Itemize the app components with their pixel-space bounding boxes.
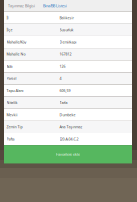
staticText: Taşınmaz Bilgisi: [8, 3, 35, 8]
staticText: Mahalle No: [6, 52, 25, 57]
staticText: İlçe: [6, 27, 12, 32]
button[interactable]: Favorilere ekle: [4, 145, 132, 163]
staticText: 606,59: [59, 88, 70, 93]
staticText: Balıkesir: [59, 15, 73, 20]
staticText: Tarla: [59, 100, 67, 105]
staticText: Ana Taşınmaz: [59, 124, 82, 129]
staticText: 4: [59, 76, 61, 81]
staticText: Mevkii: [6, 112, 17, 117]
staticText: Zemin Tip: [6, 124, 22, 129]
button[interactable]: Taşınmaz Bilgisi: [4, 0, 39, 12]
staticText: Dumbeke: [59, 112, 75, 117]
staticText: Pafta: [6, 137, 14, 141]
staticText: Tapu Alanı: [6, 88, 23, 93]
staticText: Bina/BB Listesi: [43, 3, 67, 8]
button[interactable]: Bina/BB Listesi: [39, 0, 71, 12]
staticText: Demirkapı: [59, 40, 76, 44]
staticText: I20-A-04-C-2: [59, 137, 78, 141]
staticText: Susurluk: [59, 27, 73, 32]
staticText: 167812: [59, 52, 71, 57]
staticText: Favorilere ekle: [56, 152, 80, 157]
staticText: Ada: [6, 64, 12, 69]
staticText: Mahalle/Köy: [6, 40, 26, 44]
staticText: 126: [59, 64, 65, 69]
staticText: Parsel: [6, 76, 16, 81]
staticText: Nitelik: [6, 100, 17, 105]
staticText: İl: [6, 15, 8, 20]
